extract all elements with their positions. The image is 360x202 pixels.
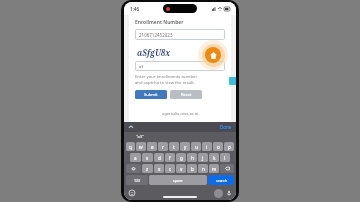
- staticText: n: [202, 166, 205, 172]
- staticText: ugresults.nios.ac.in: [135, 111, 225, 116]
- staticText: aSfgU8x: [137, 47, 171, 58]
- button[interactable]: x: [154, 164, 164, 173]
- button[interactable]: j: [198, 153, 208, 162]
- staticText: p: [228, 144, 231, 150]
- staticText: u: [195, 144, 198, 150]
- button[interactable]: m: [209, 164, 219, 173]
- staticText: k: [213, 155, 216, 161]
- button[interactable]: k: [209, 153, 219, 162]
- button[interactable]: y: [180, 142, 190, 151]
- staticText: v: [180, 166, 183, 172]
- button[interactable]: t: [169, 142, 179, 151]
- button[interactable]: d: [154, 153, 164, 162]
- button[interactable]: Dictation: [226, 190, 232, 196]
- staticText: z: [146, 166, 149, 172]
- button[interactable]: Handwriting: [214, 189, 223, 198]
- button[interactable]: aS: [135, 61, 225, 71]
- button[interactable]: n: [198, 164, 208, 173]
- staticText: Done: [220, 124, 232, 130]
- staticText: g: [180, 155, 183, 161]
- button[interactable]: i: [202, 142, 212, 151]
- button[interactable]: r: [158, 142, 168, 151]
- staticText: "aS": [136, 134, 144, 140]
- button[interactable]: Collapse keyboard: [128, 124, 134, 130]
- staticText: r: [162, 144, 164, 150]
- staticText: 1:46: [130, 6, 139, 12]
- staticText: search: [216, 178, 227, 183]
- staticText: q: [129, 144, 132, 150]
- staticText: d: [158, 155, 161, 161]
- staticText: Reset: [181, 92, 192, 97]
- button[interactable]: v: [176, 164, 186, 173]
- button[interactable]: p: [224, 142, 234, 151]
- button[interactable]: Emoji: [129, 190, 135, 196]
- staticText: space: [173, 178, 183, 183]
- staticText: w: [139, 144, 143, 150]
- staticText: b: [191, 166, 194, 172]
- button[interactable]: o: [213, 142, 223, 151]
- staticText: Submit: [144, 92, 158, 97]
- staticText: h: [191, 155, 194, 161]
- button[interactable]: Chat tab: [229, 77, 236, 85]
- staticText: o: [217, 144, 220, 150]
- staticText: c: [169, 166, 172, 172]
- button[interactable]: h: [187, 153, 197, 162]
- button[interactable]: Done: [220, 124, 232, 130]
- button[interactable]: c: [165, 164, 175, 173]
- staticText: e: [151, 144, 154, 150]
- button[interactable]: s: [142, 153, 153, 162]
- staticText: a: [134, 155, 137, 161]
- button[interactable]: space: [149, 175, 207, 185]
- button[interactable]: l: [220, 153, 230, 162]
- staticText: Enter your enrollments number: [135, 74, 198, 80]
- staticText: f: [169, 155, 171, 161]
- button[interactable]: Reset: [170, 90, 202, 99]
- button[interactable]: g: [176, 153, 186, 162]
- staticText: i: [206, 144, 208, 150]
- button[interactable]: a: [130, 153, 141, 162]
- button[interactable]: q: [126, 142, 135, 151]
- button[interactable]: f: [165, 153, 175, 162]
- button[interactable]: u: [191, 142, 201, 151]
- button[interactable]: Backspace: [220, 164, 234, 173]
- staticText: 2106712452023: [139, 32, 173, 38]
- button[interactable]: w: [136, 142, 146, 151]
- button[interactable]: 123: [126, 175, 148, 185]
- button[interactable]: Shift: [126, 164, 141, 173]
- button[interactable]: z: [142, 164, 153, 173]
- staticText: and captcha to view the result.: [135, 80, 195, 86]
- staticText: t: [173, 144, 175, 150]
- staticText: y: [184, 144, 187, 150]
- button[interactable]: e: [147, 142, 157, 151]
- button[interactable]: search: [208, 175, 234, 185]
- staticText: j: [202, 155, 204, 161]
- button[interactable]: Home: [205, 47, 221, 63]
- staticText: Enrollment Number: [135, 19, 184, 26]
- staticText: 123: [134, 178, 141, 183]
- staticText: m: [212, 166, 217, 172]
- button[interactable]: 2106712452023: [135, 29, 225, 40]
- button[interactable]: Submit: [135, 90, 167, 99]
- staticText: x: [158, 166, 161, 172]
- staticText: s: [146, 155, 149, 161]
- button[interactable]: b: [187, 164, 197, 173]
- staticText: l: [224, 155, 226, 161]
- staticText: aS: [139, 64, 144, 69]
